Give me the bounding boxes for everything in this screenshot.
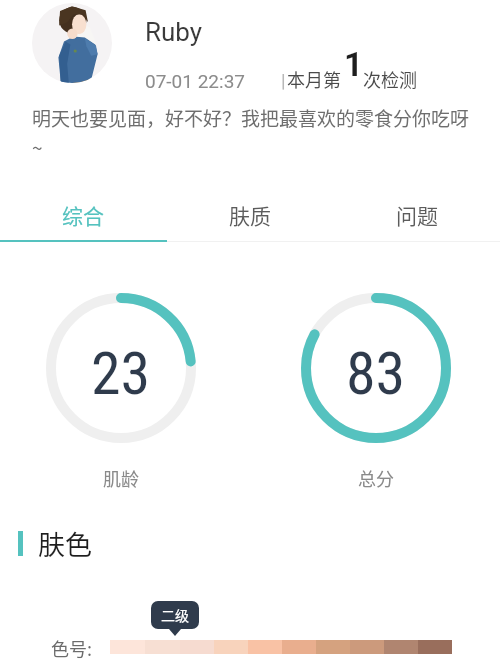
staticText: 色号: xyxy=(51,635,93,661)
button[interactable]: 二级 xyxy=(151,601,199,629)
staticText: 问题 xyxy=(396,200,438,230)
staticText: 二级 xyxy=(161,605,189,625)
staticText: 本月第 xyxy=(287,66,341,92)
staticText: 07-01 22:37 xyxy=(145,70,245,92)
staticText: 83 xyxy=(346,338,406,408)
staticText: Ruby xyxy=(145,17,203,47)
staticText: 综合 xyxy=(62,200,104,230)
staticText: 肤色 xyxy=(38,524,92,563)
staticText: 肤质 xyxy=(229,200,271,230)
button[interactable]: 肤质 xyxy=(166,193,333,237)
staticText: 23 xyxy=(91,338,151,408)
button[interactable]: Profile photo xyxy=(32,3,112,83)
staticText: 肌龄 xyxy=(103,465,139,491)
staticText: 总分 xyxy=(358,465,394,491)
button[interactable]: 问题 xyxy=(333,193,500,237)
button[interactable]: 综合 xyxy=(0,193,166,237)
staticText: 1 xyxy=(344,45,363,84)
staticText: 明天也要见面，好不好？我把最喜欢的零食分你吃呀~ xyxy=(32,104,474,161)
staticText: | xyxy=(281,69,286,91)
staticText: 次检测 xyxy=(363,66,417,92)
